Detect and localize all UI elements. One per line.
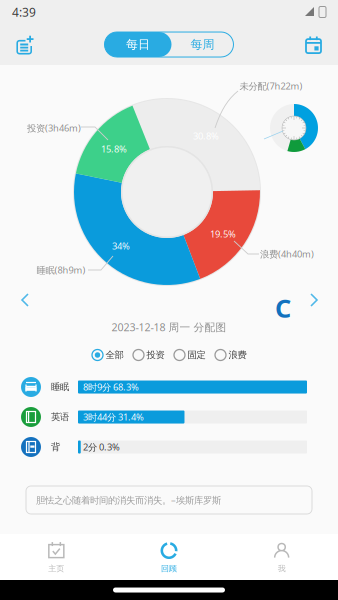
button[interactable]: 主页: [0, 534, 113, 580]
staticText: 4:39: [12, 4, 36, 20]
staticText: 34%: [112, 240, 130, 252]
staticText: 2分 0.3%: [83, 441, 120, 453]
staticText: 19.5%: [210, 228, 236, 240]
staticText: 30.8%: [193, 130, 219, 142]
staticText: 每周: [190, 37, 214, 52]
staticText: 每日: [126, 37, 150, 52]
staticText: 主页: [48, 564, 64, 573]
staticText: 投资: [146, 349, 164, 361]
staticText: 背: [51, 441, 60, 453]
staticText: 浪费: [228, 349, 246, 361]
button[interactable]: 背: [0, 0, 338, 600]
staticText: 投资(3h46m): [27, 122, 81, 134]
staticText: 未分配(7h22m): [239, 80, 302, 92]
button[interactable]: New note: [4, 24, 46, 65]
staticText: 3时44分 31.4%: [83, 411, 144, 423]
staticText: 睡眠: [51, 381, 69, 393]
button[interactable]: 我: [225, 534, 338, 580]
button[interactable]: 英语: [0, 0, 338, 600]
button[interactable]: 回顾: [113, 534, 225, 580]
button[interactable]: 固定: [173, 349, 205, 361]
button[interactable]: 投资: [132, 349, 164, 361]
button[interactable]: Calendar: [292, 24, 334, 65]
staticText: 全部: [105, 349, 123, 361]
staticText: 8时9分 68.3%: [83, 381, 139, 393]
button[interactable]: 每日: [104, 32, 171, 57]
staticText: 固定: [187, 349, 205, 361]
button[interactable]: 每周: [171, 32, 233, 57]
staticText: C: [275, 291, 291, 325]
staticText: 浪费(4h40m): [260, 248, 314, 260]
staticText: 2023-12-18 周一 分配图: [111, 320, 226, 334]
staticText: 我: [278, 564, 286, 573]
staticText: 胆怯之心随着时间的消失而消失。–埃斯库罗斯: [36, 494, 221, 506]
staticText: 15.8%: [101, 143, 127, 155]
staticText: 回顾: [161, 564, 177, 573]
staticText: 英语: [51, 411, 69, 423]
button[interactable]: 睡眠: [0, 0, 338, 600]
button[interactable]: 浪费: [214, 349, 246, 361]
staticText: 睡眠(8h9m): [36, 264, 85, 276]
button[interactable]: 全部: [91, 349, 123, 361]
